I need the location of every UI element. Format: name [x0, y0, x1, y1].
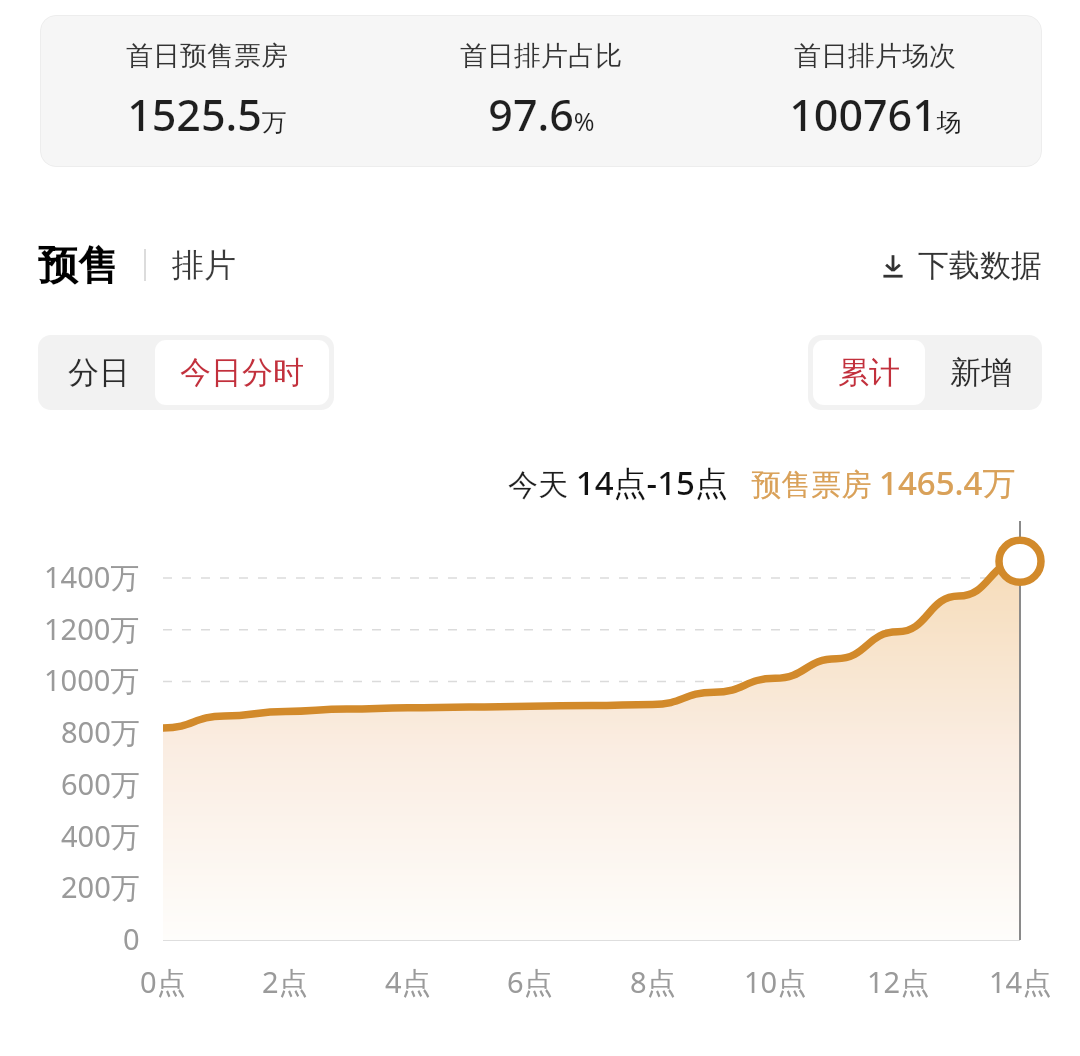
staticText: 今天 14点-15点 预售票房 1465.4万 [508, 460, 1016, 505]
staticText: 首日预售票房 [126, 39, 288, 73]
staticText: 1000万 [44, 660, 140, 700]
staticText: 新增 [950, 353, 1012, 392]
staticText: 8点 [630, 962, 676, 1002]
staticText: 排片 [172, 245, 236, 285]
staticText: 600万 [61, 764, 140, 804]
staticText: 下载数据 [918, 246, 1042, 285]
button[interactable]: 今天 14点-15点 预售票房 1465.4万 [478, 443, 1045, 521]
button[interactable]: 今日分时 [155, 340, 329, 405]
staticText: 今日分时 [180, 353, 304, 392]
staticText: 分日 [68, 353, 130, 392]
button[interactable]: 分日 [43, 340, 155, 405]
button[interactable]: 累计 [813, 340, 925, 405]
staticText: 首日排片占比 [460, 39, 622, 73]
button[interactable]: 下载数据 [878, 246, 1042, 285]
staticText: 1525.5万 [127, 85, 287, 144]
staticText: 800万 [61, 712, 140, 752]
staticText: 0点 [140, 962, 186, 1002]
staticText: 100761场 [789, 85, 962, 144]
button[interactable]: 新增 [925, 340, 1037, 405]
staticText: 首日排片场次 [794, 39, 956, 73]
staticText: 4点 [385, 962, 431, 1002]
staticText: 400万 [61, 816, 140, 856]
staticText: 12点 [867, 962, 930, 1002]
staticText: 0 [123, 919, 140, 958]
staticText: 200万 [61, 867, 140, 907]
staticText: 1400万 [44, 557, 140, 597]
button[interactable]: 排片 [172, 245, 236, 285]
staticText: 97.6% [488, 85, 595, 144]
staticText: 2点 [262, 962, 308, 1002]
staticText: 14点 [989, 962, 1052, 1002]
staticText: 累计 [838, 353, 900, 392]
staticText: 1200万 [44, 609, 140, 649]
staticText: 10点 [744, 962, 807, 1002]
other: 下载数据 [878, 251, 908, 281]
button[interactable]: 预售 [38, 240, 118, 290]
staticText: 预售 [38, 240, 118, 290]
staticText: 6点 [507, 962, 553, 1002]
